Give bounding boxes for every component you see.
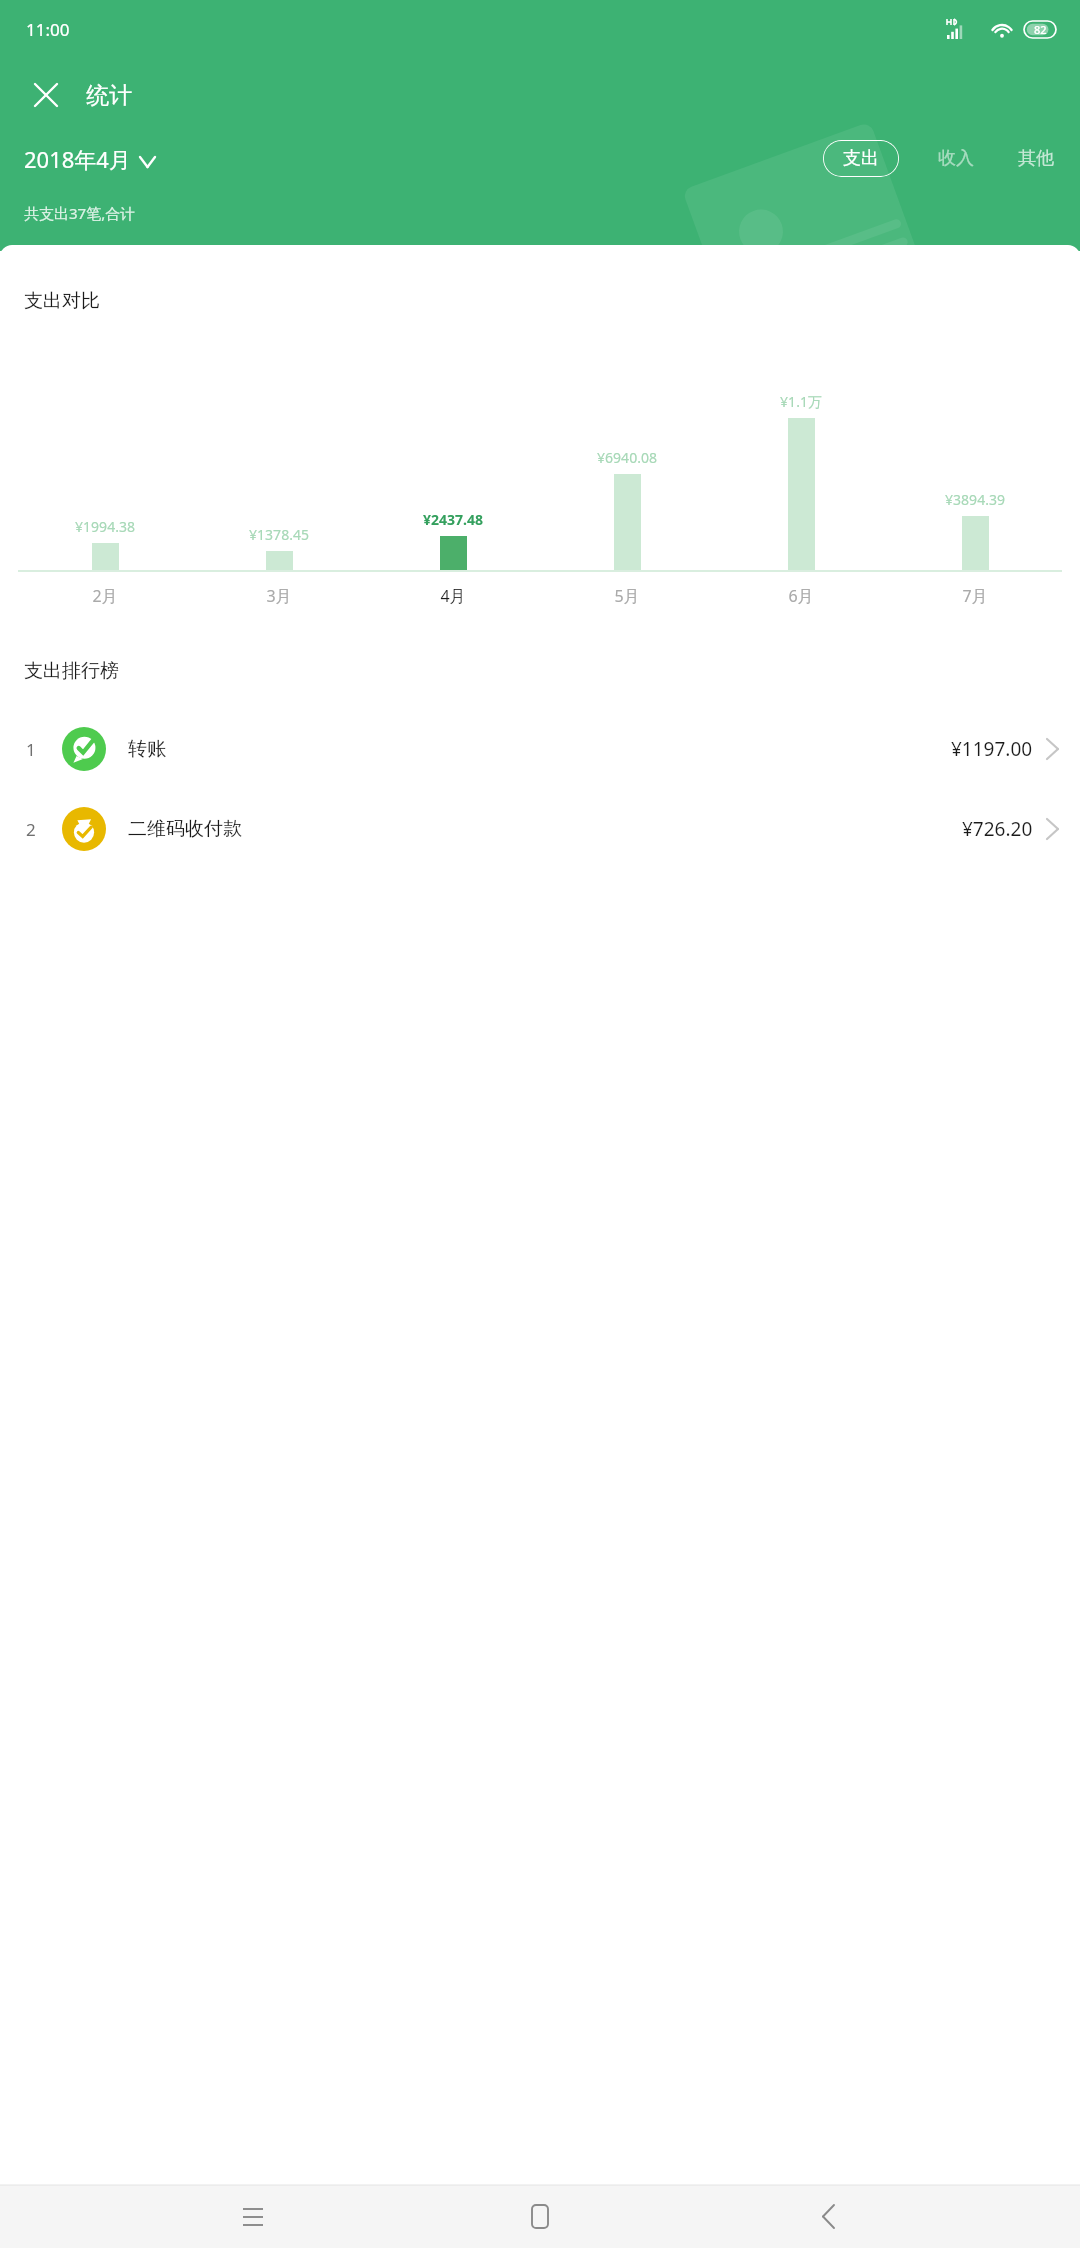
- button[interactable]: 2018年4月: [24, 144, 155, 174]
- button[interactable]: Back: [793, 2185, 863, 2248]
- staticText: ¥3894.39: [945, 490, 1005, 509]
- staticText: 转账: [128, 737, 166, 761]
- staticText: 共支出37笔,合计: [24, 203, 136, 223]
- staticText: ¥1994.38: [75, 517, 135, 536]
- staticText: 7月: [962, 585, 988, 607]
- staticText: 2018年4月: [24, 144, 131, 174]
- staticText: ¥1378.45: [249, 525, 309, 544]
- staticText: 11:00: [26, 18, 70, 41]
- staticText: 1: [26, 738, 36, 761]
- button[interactable]: Recents: [218, 2185, 288, 2248]
- staticText: ¥1197.00: [951, 736, 1033, 762]
- staticText: 5月: [614, 585, 640, 607]
- staticText: 82: [1034, 22, 1047, 37]
- button[interactable]: 收入: [934, 140, 978, 177]
- button[interactable]: Close: [20, 69, 72, 121]
- button[interactable]: 支出: [822, 140, 900, 177]
- staticText: 2: [26, 818, 36, 841]
- staticText: ¥ 2437.48: [22, 233, 240, 251]
- staticText: 收入: [938, 147, 974, 170]
- staticText: 支出: [843, 147, 879, 170]
- staticText: 统计: [86, 81, 132, 110]
- staticText: 支出对比: [24, 289, 100, 313]
- button[interactable]: 其他: [1014, 140, 1058, 177]
- button[interactable]: Home: [505, 2185, 575, 2248]
- button[interactable]: 1: [0, 709, 1080, 789]
- staticText: 其他: [1018, 147, 1054, 170]
- staticText: ¥1.1万: [780, 392, 822, 411]
- staticText: ¥726.20: [962, 816, 1033, 842]
- staticText: 支出排行榜: [24, 659, 119, 683]
- staticText: 6月: [788, 585, 814, 607]
- staticText: 3月: [266, 585, 292, 607]
- staticText: 二维码收付款: [128, 817, 242, 841]
- staticText: 4月: [440, 585, 466, 607]
- staticText: ¥6940.08: [597, 448, 657, 467]
- button[interactable]: 2: [0, 789, 1080, 869]
- staticText: ¥2437.48: [423, 510, 483, 529]
- staticText: 2月: [92, 585, 118, 607]
